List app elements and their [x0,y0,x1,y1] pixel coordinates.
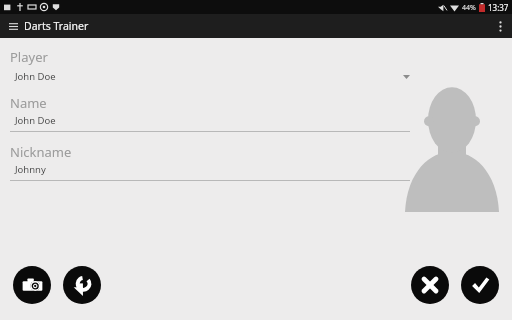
button[interactable]: Confirm [461,266,499,304]
staticText: Player [10,48,48,66]
button[interactable]: John Doe [10,66,410,86]
button[interactable]: Cancel [411,266,449,304]
staticText: John Doe [15,114,56,127]
staticText: Nickname [10,143,72,161]
button[interactable]: Johnny [10,163,410,181]
button[interactable]: John Doe [10,114,410,132]
staticText: 13:37 [488,2,509,13]
staticText: 44% [462,3,476,13]
staticText: Johnny [15,163,46,176]
button[interactable]: Rotate [63,266,101,304]
button[interactable]: More options [489,15,511,37]
staticText: John Doe [15,70,56,83]
staticText: Darts Trainer [24,19,89,33]
button[interactable]: Open navigation drawer [2,15,24,37]
button[interactable]: Take photo [13,266,51,304]
staticText: Name [10,94,47,112]
